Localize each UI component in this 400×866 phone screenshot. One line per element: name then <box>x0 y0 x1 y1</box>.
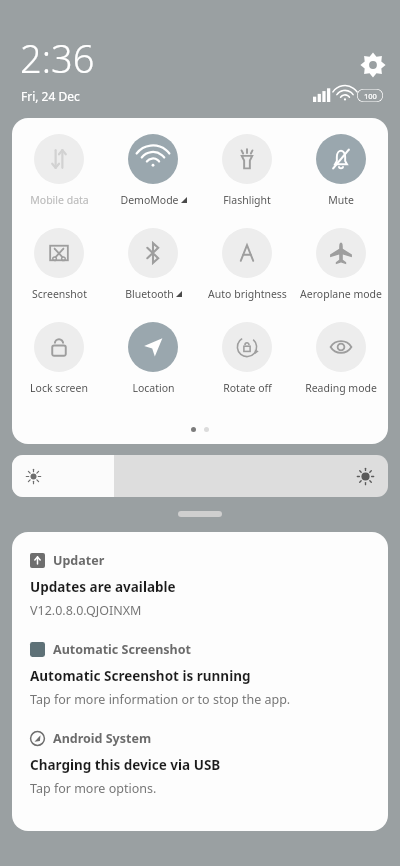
staticText: Fri, 24 Dec <box>21 88 80 104</box>
staticText: Automatic Screenshot <box>53 641 191 658</box>
button[interactable]: Location <box>106 322 200 416</box>
staticText: Android System <box>53 730 152 747</box>
button[interactable]: Automatic Screenshot <box>30 619 370 708</box>
button[interactable]: Settings <box>358 50 388 80</box>
button[interactable]: DemoMode <box>106 134 200 228</box>
button[interactable]: Mobile data <box>12 134 106 228</box>
staticText: 2:36 <box>20 32 95 84</box>
button[interactable]: Mute <box>294 134 388 228</box>
staticText: 100 <box>364 91 377 101</box>
staticText: Mute <box>328 193 354 207</box>
button[interactable]: Android System <box>30 708 370 797</box>
staticText: V12.0.8.0.QJOINXM <box>30 602 142 619</box>
button[interactable]: Rotate off <box>200 322 294 416</box>
button[interactable]: Reading mode <box>294 322 388 416</box>
staticText: Tap for more information or to stop the … <box>30 691 291 708</box>
staticText: Mobile data <box>30 193 89 207</box>
button[interactable]: Bluetooth <box>106 228 200 322</box>
button[interactable]: Lock screen <box>12 322 106 416</box>
staticText: Flashlight <box>223 193 271 207</box>
staticText: Updates are available <box>30 578 176 596</box>
button[interactable]: Aeroplane mode <box>294 228 388 322</box>
staticText: Lock screen <box>30 381 88 395</box>
staticText: Screenshot <box>32 287 87 301</box>
staticText: Reading mode <box>305 381 377 395</box>
button[interactable]: Brightness <box>12 455 388 497</box>
button[interactable]: Screenshot <box>12 228 106 322</box>
button[interactable]: Flashlight <box>200 134 294 228</box>
staticText: Location <box>132 381 175 395</box>
button[interactable]: Auto brightness <box>200 228 294 322</box>
staticText: DemoMode <box>120 193 179 207</box>
staticText: Auto brightness <box>208 287 287 301</box>
staticText: Rotate off <box>223 381 272 395</box>
staticText: Aeroplane mode <box>300 287 382 301</box>
staticText: Updater <box>53 552 105 569</box>
staticText: Tap for more options. <box>30 780 157 797</box>
staticText: Automatic Screenshot is running <box>30 667 251 685</box>
staticText: Charging this device via USB <box>30 756 221 774</box>
staticText: Bluetooth <box>125 287 174 301</box>
button[interactable]: Updater <box>30 532 370 619</box>
